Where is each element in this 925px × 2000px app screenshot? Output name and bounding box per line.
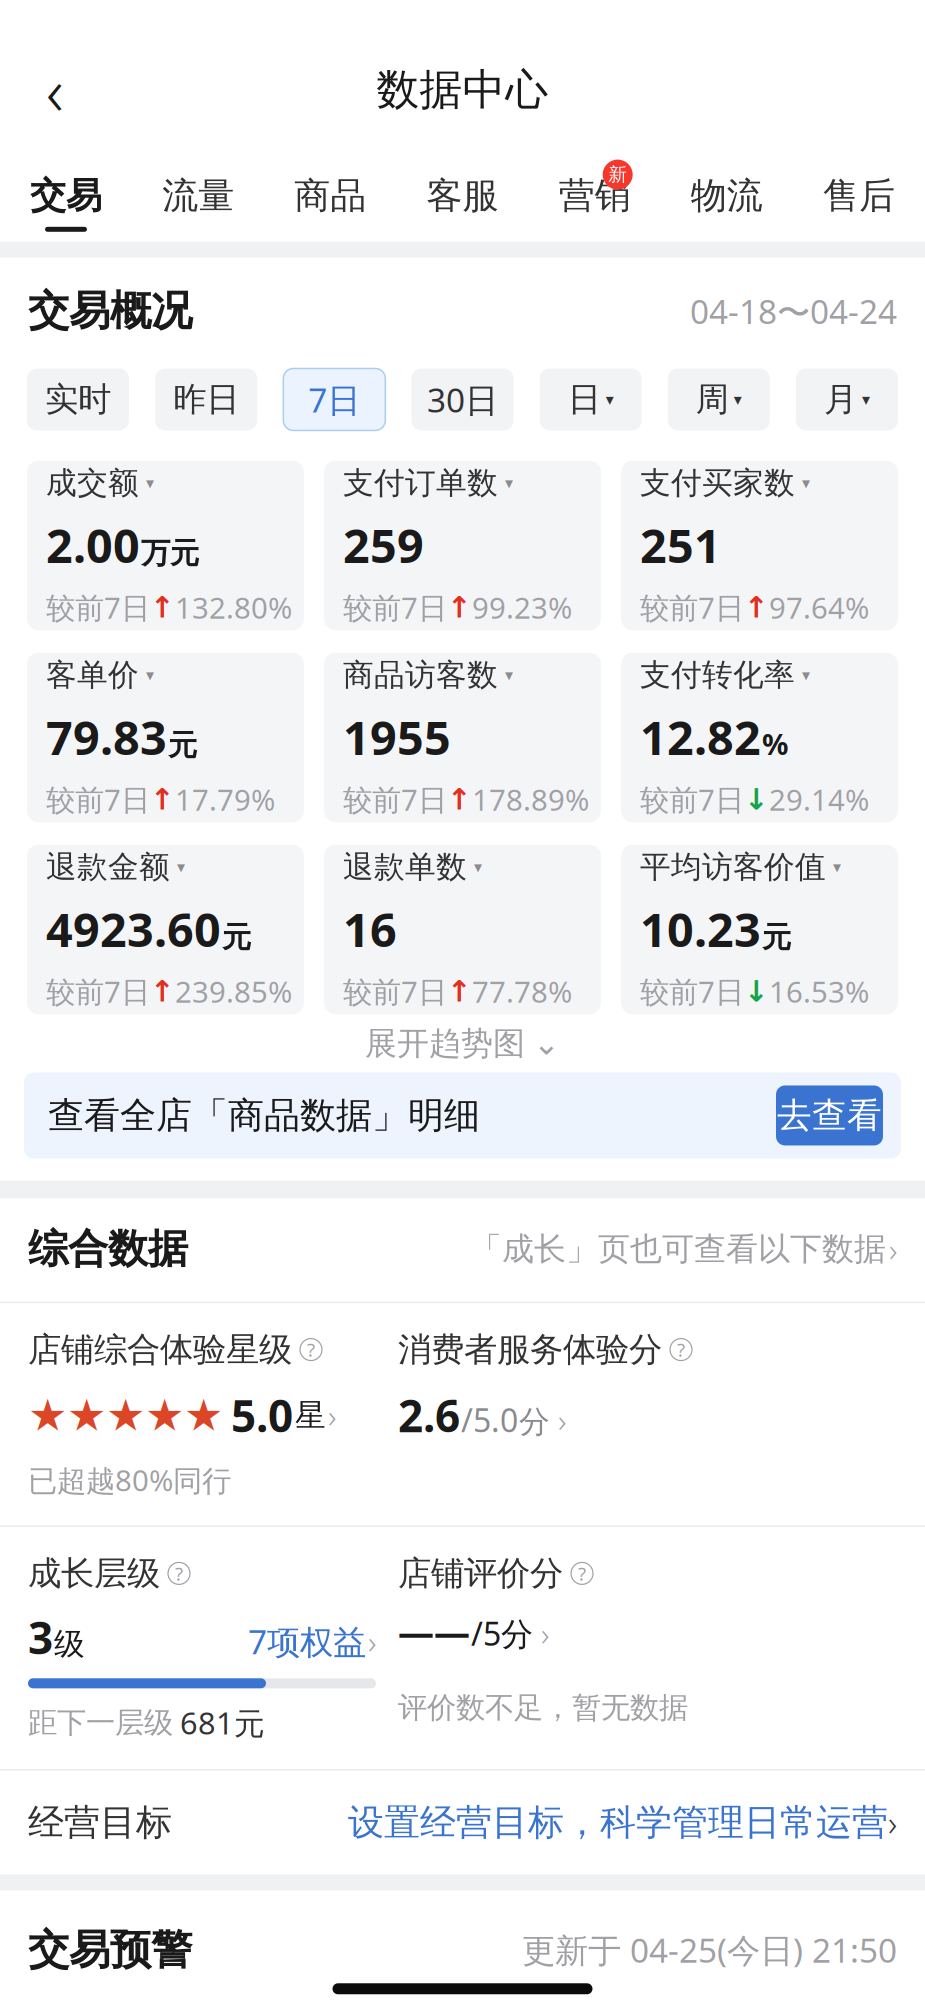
staticText: 2.6 bbox=[398, 1386, 460, 1444]
button[interactable]: 周 bbox=[668, 368, 770, 430]
staticText: 平均访客价值 bbox=[640, 848, 826, 886]
staticText: 较前7日 bbox=[46, 972, 150, 1011]
staticText: 交易概况 bbox=[28, 286, 192, 336]
staticText: 去查看 bbox=[777, 1094, 882, 1137]
button[interactable]: 支付订单数 bbox=[324, 460, 601, 630]
button[interactable]: 7项权益 bbox=[248, 1619, 376, 1663]
staticText: › bbox=[541, 1612, 549, 1655]
button[interactable]: 商品访客数 bbox=[324, 652, 601, 822]
button[interactable]: 店铺综合体验星级 bbox=[28, 1329, 398, 1499]
staticText: 客服 bbox=[426, 174, 498, 218]
staticText: 16 bbox=[343, 898, 397, 960]
staticText: 日 bbox=[568, 379, 601, 420]
staticText: 成交额 bbox=[46, 464, 139, 502]
staticText: 4923.60 bbox=[46, 898, 221, 960]
staticText: 较前7日 bbox=[46, 780, 150, 819]
staticText: 3 bbox=[28, 1608, 53, 1666]
staticText: 实时 bbox=[45, 379, 111, 420]
button[interactable]: 流量 bbox=[160, 150, 236, 242]
staticText: ⌄ bbox=[533, 1025, 560, 1062]
staticText: 已超越80%同行 bbox=[28, 1460, 231, 1499]
staticText: 交易 bbox=[30, 174, 102, 218]
button[interactable]: 实时 bbox=[27, 368, 129, 430]
staticText: 较前7日 bbox=[640, 972, 744, 1011]
staticText: ↑ bbox=[744, 591, 769, 624]
button[interactable]: Back bbox=[20, 55, 90, 125]
button[interactable]: 日 bbox=[540, 368, 642, 430]
staticText: 79.83 bbox=[46, 706, 167, 768]
staticText: 商品 bbox=[294, 174, 366, 218]
staticText: 退款单数 bbox=[343, 848, 467, 886]
staticText: 昨日 bbox=[173, 379, 239, 420]
staticText: 支付买家数 bbox=[640, 464, 795, 502]
staticText: /5分 bbox=[471, 1612, 533, 1655]
button[interactable]: 去查看 bbox=[776, 1085, 883, 1145]
button[interactable]: 展开趋势图 bbox=[0, 1014, 925, 1072]
staticText: 7日 bbox=[308, 377, 360, 422]
staticText: 物流 bbox=[691, 174, 763, 218]
button[interactable]: 7日 bbox=[283, 368, 385, 430]
staticText: % bbox=[762, 724, 788, 763]
staticText: ↓ bbox=[744, 783, 769, 816]
button[interactable]: 退款单数 bbox=[324, 844, 601, 1014]
button[interactable]: 商品 bbox=[292, 150, 368, 242]
button[interactable]: 成交额 bbox=[27, 460, 304, 630]
button[interactable]: 店铺评价分 bbox=[398, 1553, 778, 1726]
staticText: 店铺评价分 bbox=[398, 1553, 563, 1594]
staticText: 万元 bbox=[141, 535, 199, 571]
staticText: 综合数据 bbox=[28, 1224, 188, 1274]
staticText: 元 bbox=[762, 919, 791, 955]
staticText: › bbox=[888, 1799, 897, 1845]
staticText: 交易预警 bbox=[28, 1924, 192, 1975]
button[interactable]: 平均访客价值 bbox=[621, 844, 898, 1014]
staticText: 1955 bbox=[343, 706, 451, 768]
staticText: ▾ bbox=[734, 390, 742, 409]
button[interactable]: 30日 bbox=[411, 368, 513, 430]
staticText: 99.23% bbox=[472, 588, 572, 627]
staticText: 30日 bbox=[427, 377, 498, 422]
button[interactable]: 昨日 bbox=[155, 368, 257, 430]
staticText: 17.79% bbox=[175, 780, 275, 819]
button[interactable]: 交易 bbox=[28, 150, 104, 242]
button[interactable]: 消费者服务体验分 bbox=[398, 1329, 778, 1499]
button[interactable]: 支付转化率 bbox=[621, 652, 898, 822]
staticText: 251 bbox=[640, 514, 721, 576]
staticText: ? bbox=[307, 1337, 315, 1362]
button[interactable]: 营销 bbox=[557, 150, 633, 242]
staticText: ? bbox=[175, 1561, 183, 1586]
staticText: 月 bbox=[824, 379, 857, 420]
staticText: ▾ bbox=[474, 858, 482, 876]
button[interactable]: 退款金额 bbox=[27, 844, 304, 1014]
staticText: ▾ bbox=[833, 858, 841, 876]
staticText: 16.53% bbox=[769, 972, 869, 1011]
staticText: 5.0 bbox=[231, 1386, 293, 1444]
staticText: ▾ bbox=[146, 474, 154, 492]
staticText: 259 bbox=[343, 514, 424, 576]
button[interactable]: 支付买家数 bbox=[621, 460, 898, 630]
button[interactable]: 物流 bbox=[689, 150, 765, 242]
staticText: 2.00 bbox=[46, 514, 140, 576]
button[interactable]: 月 bbox=[796, 368, 898, 430]
staticText: ‹ bbox=[46, 45, 64, 134]
staticText: ? bbox=[677, 1337, 685, 1362]
button[interactable]: 客服 bbox=[424, 150, 500, 242]
button[interactable]: 经营目标 bbox=[0, 1770, 925, 1874]
staticText: /5.0 bbox=[461, 1399, 518, 1441]
staticText: ? bbox=[578, 1561, 586, 1586]
staticText: ↑ bbox=[150, 783, 175, 816]
staticText: 更新于 04-25(今日) 21:50 bbox=[522, 1928, 897, 1972]
staticText: 较前7日 bbox=[640, 780, 744, 819]
staticText: 星 bbox=[295, 1396, 326, 1434]
staticText: 新 bbox=[608, 163, 627, 186]
staticText: ↑ bbox=[150, 591, 175, 624]
button[interactable]: 售后 bbox=[821, 150, 897, 242]
staticText: 成长层级 bbox=[28, 1553, 160, 1594]
staticText: 分 bbox=[519, 1403, 550, 1441]
staticText: 支付转化率 bbox=[640, 656, 795, 694]
staticText: 查看全店「商品数据」明细 bbox=[48, 1093, 480, 1138]
staticText: ↑ bbox=[447, 591, 472, 624]
button[interactable]: 「成长」页也可查看以下数据 bbox=[470, 1228, 897, 1270]
staticText: ▾ bbox=[146, 666, 154, 684]
button[interactable]: 客单价 bbox=[27, 652, 304, 822]
